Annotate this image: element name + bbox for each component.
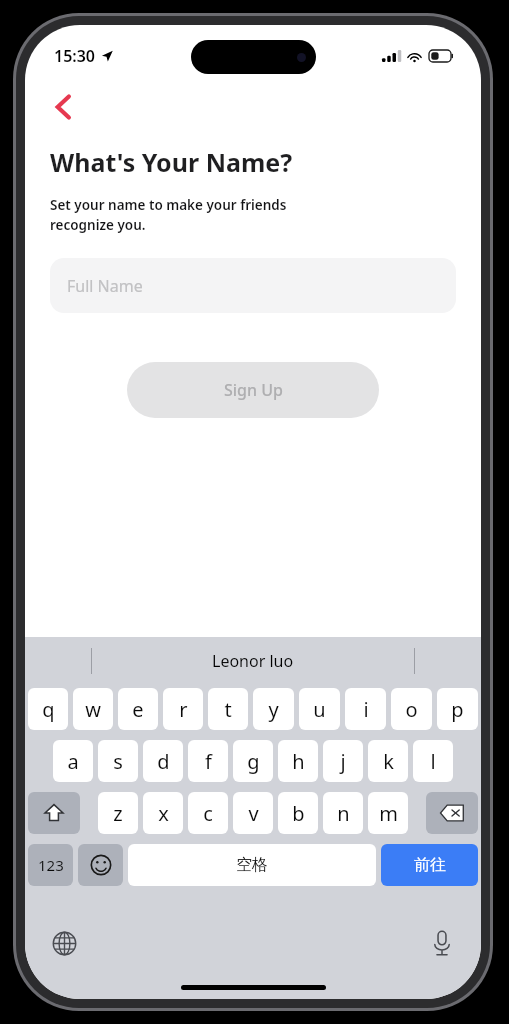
button[interactable]: Shift (28, 792, 80, 834)
staticText: v (248, 800, 259, 827)
staticText: j (340, 748, 346, 775)
button[interactable]: b (278, 792, 318, 834)
button[interactable]: t (208, 688, 248, 730)
button[interactable]: z (98, 792, 138, 834)
button[interactable]: v (233, 792, 273, 834)
button[interactable]: g (233, 740, 273, 782)
button[interactable]: j (323, 740, 363, 782)
button[interactable]: 前往 (381, 844, 478, 886)
button[interactable]: Full Name (50, 258, 456, 313)
staticText: i (363, 696, 369, 723)
staticText: b (292, 800, 305, 827)
button[interactable]: y (253, 688, 294, 730)
staticText: What's Your Name? (50, 145, 293, 179)
button[interactable]: p (437, 688, 478, 730)
button[interactable]: 空格 (128, 844, 376, 886)
button[interactable]: f (188, 740, 228, 782)
button[interactable]: Back (43, 87, 83, 127)
button[interactable]: Emoji (78, 844, 123, 886)
button[interactable]: Leonor luo (212, 650, 294, 672)
staticText: 15:30 (54, 45, 96, 67)
button[interactable]: r (163, 688, 203, 730)
staticText: t (224, 696, 232, 723)
button[interactable]: h (278, 740, 318, 782)
staticText: d (157, 748, 170, 775)
button[interactable]: m (368, 792, 408, 834)
staticText: 空格 (236, 855, 268, 875)
staticText: l (430, 748, 436, 775)
staticText: p (451, 696, 464, 723)
button[interactable]: o (391, 688, 432, 730)
staticText: o (405, 696, 418, 723)
staticText: Full Name (67, 275, 143, 297)
button[interactable]: n (323, 792, 363, 834)
staticText: c (203, 800, 213, 827)
button[interactable]: 123 (28, 844, 73, 886)
staticText: z (113, 800, 123, 827)
staticText: n (337, 800, 350, 827)
staticText: h (292, 748, 305, 775)
button[interactable]: e (118, 688, 158, 730)
staticText: w (85, 696, 101, 723)
button[interactable]: q (28, 688, 68, 730)
staticText: s (113, 748, 123, 775)
button[interactable]: k (368, 740, 408, 782)
staticText: e (132, 696, 144, 723)
staticText: Set your name to make your friends recog… (50, 196, 287, 234)
button[interactable]: c (188, 792, 228, 834)
button[interactable]: Change keyboard (47, 926, 81, 960)
button[interactable]: l (413, 740, 453, 782)
staticText: 123 (38, 855, 64, 875)
staticText: 前往 (414, 855, 446, 875)
staticText: u (313, 696, 326, 723)
staticText: Sign Up (224, 379, 283, 401)
button[interactable]: Sign Up (127, 362, 379, 418)
staticText: m (379, 800, 398, 827)
button[interactable]: i (345, 688, 386, 730)
staticText: r (179, 696, 188, 723)
button[interactable]: u (299, 688, 340, 730)
button[interactable]: Backspace (426, 792, 478, 834)
staticText: g (247, 748, 260, 775)
staticText: k (383, 748, 394, 775)
staticText: f (205, 748, 212, 775)
button[interactable]: s (98, 740, 138, 782)
staticText: a (67, 748, 79, 775)
staticText: q (42, 696, 55, 723)
button[interactable]: a (53, 740, 93, 782)
button[interactable]: x (143, 792, 183, 834)
button[interactable]: d (143, 740, 183, 782)
staticText: x (158, 800, 169, 827)
staticText: y (268, 696, 279, 723)
button[interactable]: w (73, 688, 113, 730)
button[interactable]: Dictation (425, 926, 459, 960)
